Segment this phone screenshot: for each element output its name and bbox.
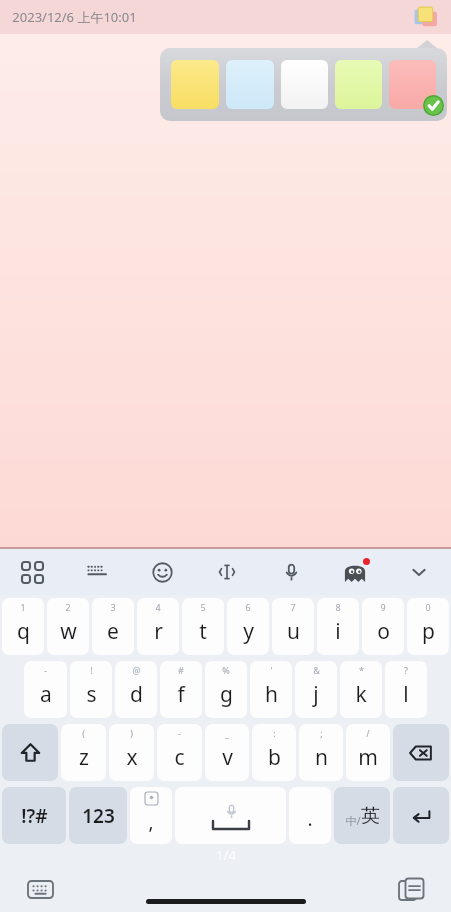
button[interactable]: 8 [317,598,359,655]
staticText: n [315,743,328,772]
staticText: j [313,680,319,709]
staticText: ( [82,727,85,739]
button[interactable]: 3 [92,598,134,655]
staticText: v [222,743,233,772]
staticText: _ [225,727,229,739]
staticText: u [287,617,300,646]
button[interactable]: 0 [407,598,449,655]
staticText: 8 [335,601,341,613]
button[interactable]: - [157,724,202,781]
button[interactable]: ) [109,724,154,781]
button[interactable]: 5 [182,598,224,655]
button[interactable]: * [340,661,382,718]
staticText: f [177,680,185,709]
staticText: q [17,617,30,646]
staticText: o [377,617,390,646]
staticText: 英 [361,804,380,828]
staticText: s [86,680,97,709]
button[interactable]: !?# [2,787,66,844]
button[interactable]: 7 [272,598,314,655]
button[interactable]: Note colour [411,2,441,32]
button[interactable]: ? [385,661,427,718]
staticText: ! [90,664,93,676]
staticText: ? [404,664,408,676]
button[interactable]: - [24,661,67,718]
button[interactable]: Colour 1 [171,60,219,109]
button[interactable]: Voice input [259,549,323,595]
button[interactable]: Backspace [393,724,449,781]
staticText: p [422,617,435,646]
staticText: @ [132,664,141,676]
button[interactable]: _ [205,724,249,781]
button[interactable]: ! [70,661,112,718]
staticText: * [359,664,364,676]
staticText: # [178,664,184,676]
button[interactable]: ; [299,724,343,781]
button[interactable]: 123 [69,787,127,844]
staticText: 6 [245,601,251,613]
button[interactable]: 中/ [334,787,390,844]
staticText: w [60,617,77,646]
staticText: 2 [65,601,71,613]
staticText: ; [320,727,323,739]
button[interactable]: # [160,661,202,718]
staticText: k [355,680,367,709]
staticText: e [107,617,119,646]
button[interactable]: 4 [137,598,179,655]
staticText: - [44,664,47,676]
staticText: ) [130,727,133,739]
staticText: 2023/12/6 上午10:01 [12,8,137,26]
staticText: - [178,727,181,739]
button[interactable]: @ [115,661,157,718]
button[interactable]: Colour 2 [226,60,274,109]
staticText: y [243,617,254,646]
staticText: !?# [21,803,48,829]
button[interactable]: Comma [130,787,172,844]
staticText: 5 [200,601,206,613]
button[interactable]: 9 [362,598,404,655]
button[interactable]: Period [289,787,331,844]
button[interactable]: Colour 3 [281,60,328,109]
button[interactable]: % [205,661,247,718]
button[interactable]: ( [61,724,106,781]
staticText: & [313,664,320,676]
button[interactable]: Apps [0,549,65,595]
button[interactable]: Stickers [323,549,387,595]
staticText: a [40,680,52,709]
staticText: ' [270,664,273,676]
staticText: 9 [380,601,386,613]
button[interactable]: Cursor [195,549,259,595]
button[interactable]: Shift [2,724,58,781]
staticText: r [154,617,163,646]
button[interactable]: Emoji [130,549,195,595]
staticText: 0 [425,601,431,613]
staticText: 中/ [345,813,361,828]
button[interactable]: 1 [2,598,44,655]
button[interactable]: Colour 4 [335,60,382,109]
staticText: b [268,743,281,772]
staticText: 123 [82,803,115,829]
staticText: t [199,617,207,646]
button[interactable]: / [346,724,390,781]
button[interactable]: Hide keyboard [387,549,451,595]
button[interactable]: Switch keyboard [24,873,56,905]
button[interactable]: 6 [227,598,269,655]
button[interactable]: : [252,724,296,781]
staticText: i [335,617,341,646]
button[interactable]: 2 [47,598,89,655]
button[interactable]: Keyboard layout [65,549,130,595]
button[interactable]: Space [175,787,286,844]
button[interactable]: ' [250,661,292,718]
staticText: d [130,680,143,709]
staticText: 3 [110,601,116,613]
staticText: % [222,664,230,676]
staticText: . [307,806,313,832]
staticText: / [366,727,370,739]
staticText: h [265,680,278,709]
button[interactable]: Colour 5 [389,60,436,109]
button[interactable]: & [295,661,337,718]
staticText: 1 [20,601,26,613]
button[interactable]: Clipboard [395,873,427,905]
staticText: 1/4 [216,846,236,864]
button[interactable]: Enter [393,787,449,844]
